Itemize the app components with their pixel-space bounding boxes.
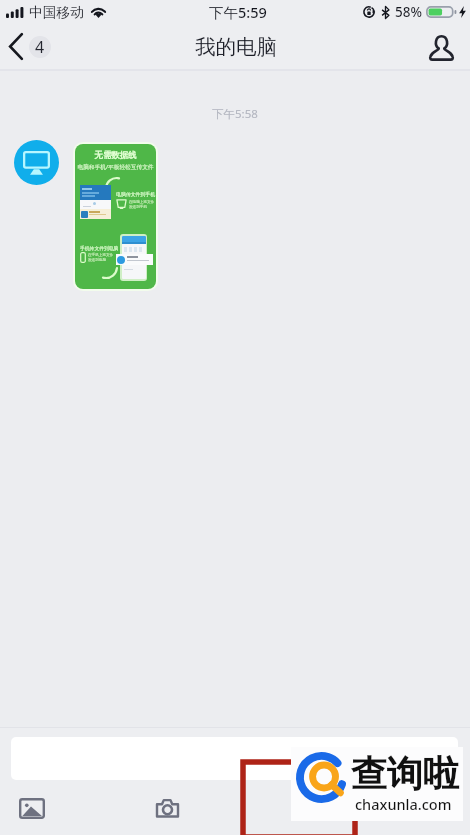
- button[interactable]: Back: [0, 24, 61, 69]
- staticText: chaxunla.com: [355, 794, 452, 814]
- staticText: 查询啦: [351, 751, 459, 796]
- button[interactable]: Gallery: [6, 790, 58, 826]
- staticText: 4: [35, 36, 45, 58]
- staticText: 在电脑上将文件 发送到手机: [129, 200, 155, 210]
- staticText: 下午5:59: [209, 2, 267, 22]
- staticText: 58%: [395, 3, 422, 21]
- staticText: 我的电脑: [195, 34, 277, 60]
- button[interactable]: Files: [279, 790, 329, 826]
- button[interactable]: My Computer avatar: [14, 140, 59, 185]
- button[interactable]: Chat info: [412, 24, 470, 69]
- staticText: 下午5:58: [212, 106, 258, 122]
- staticText: 无需数据线: [75, 150, 156, 161]
- staticText: 电脑传文件到手机: [116, 191, 156, 197]
- staticText: 在手机上将文件 发送到电脑: [88, 253, 114, 263]
- button[interactable]: Camera: [143, 790, 191, 826]
- button[interactable]: Image message: [75, 144, 156, 289]
- button[interactable]: More: [412, 790, 462, 826]
- button[interactable]: Message input: [11, 737, 458, 780]
- staticText: 电脑和手机/平板轻松互传文件: [75, 163, 156, 171]
- staticText: 中国移动: [29, 4, 84, 21]
- staticText: 手机传文件到电脑: [80, 245, 119, 251]
